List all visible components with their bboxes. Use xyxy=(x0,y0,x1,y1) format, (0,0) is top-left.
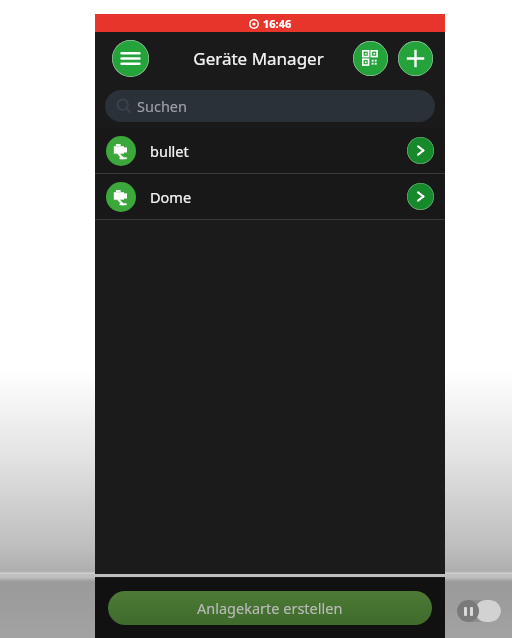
button[interactable]: bullet xyxy=(95,128,445,173)
button[interactable]: Add device xyxy=(398,41,433,76)
staticText: Anlagekarte erstellen xyxy=(197,598,343,618)
button[interactable]: Suchen xyxy=(105,90,435,122)
staticText: Geräte Manager xyxy=(193,47,324,70)
button[interactable]: Open Dome xyxy=(407,183,434,210)
button[interactable]: Anlagekarte erstellen xyxy=(108,591,432,625)
button[interactable]: Dome xyxy=(95,174,445,219)
staticText: Suchen xyxy=(137,96,187,116)
button[interactable]: Scan QR code xyxy=(353,41,388,76)
button[interactable]: Open bullet xyxy=(407,137,434,164)
button[interactable]: Menu xyxy=(112,40,149,77)
button[interactable]: Pause xyxy=(457,600,501,622)
staticText: Dome xyxy=(150,187,192,207)
staticText: 16:46 xyxy=(263,16,292,31)
staticText: bullet xyxy=(150,141,189,161)
